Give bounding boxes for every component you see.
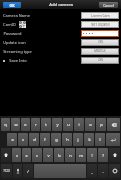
- staticText: Add camera: [49, 2, 73, 8]
- staticText: Cancel: [103, 3, 114, 8]
- button[interactable]: Keyboard settings: [109, 164, 120, 178]
- staticText: o: [89, 122, 92, 127]
- staticText: m: [79, 153, 83, 158]
- button[interactable]: j: [73, 133, 83, 146]
- staticText: p: [100, 122, 103, 127]
- button[interactable]: /: [23, 164, 33, 178]
- staticText: Camera Name: [3, 13, 30, 18]
- staticText: w: [14, 122, 18, 127]
- staticText: x: [25, 153, 28, 158]
- staticText: Password: [3, 31, 22, 36]
- button[interactable]: q: [1, 118, 10, 131]
- staticText: f: [44, 137, 46, 142]
- staticText: z: [16, 153, 18, 158]
- button[interactable]: t: [41, 118, 51, 131]
- staticText: d: [33, 137, 36, 142]
- button[interactable]: v: [43, 148, 53, 162]
- staticText: v: [47, 153, 50, 158]
- staticText: c: [36, 153, 38, 158]
- staticText: a: [11, 137, 14, 142]
- button[interactable]: ON: [81, 39, 119, 46]
- staticText: j: [77, 137, 79, 142]
- button[interactable]: i: [74, 118, 84, 131]
- button[interactable]: Backspace: [107, 118, 120, 131]
- staticText: ,: [91, 169, 93, 174]
- staticText: ON: [98, 58, 103, 62]
- staticText: b: [58, 153, 61, 158]
- button[interactable]: l: [95, 133, 105, 146]
- button[interactable]: k: [84, 133, 94, 146]
- staticText: /: [27, 169, 29, 174]
- staticText: q: [4, 122, 7, 127]
- staticText: t: [45, 122, 47, 127]
- button[interactable]: Enter: [106, 133, 120, 146]
- button[interactable]: e: [21, 118, 30, 131]
- staticText: ?123: [3, 169, 10, 173]
- staticText: ?: [102, 153, 104, 158]
- staticText: MIDDLE: [94, 49, 106, 53]
- button[interactable]: CamID: [0, 20, 121, 29]
- button[interactable]: ,: [87, 164, 97, 178]
- staticText: 901 002803: [91, 22, 110, 27]
- staticText: Streaming type: [3, 49, 32, 54]
- button[interactable]: o: [85, 118, 95, 131]
- button[interactable]: OK: [3, 2, 21, 8]
- staticText: Save Into: [9, 58, 27, 63]
- staticText: e: [24, 122, 27, 127]
- button[interactable]: u: [63, 118, 73, 131]
- button[interactable]: s: [18, 133, 28, 146]
- button[interactable]: [81, 30, 119, 37]
- button[interactable]: p: [96, 118, 106, 131]
- button[interactable]: b: [54, 148, 64, 162]
- button[interactable]: z: [12, 148, 21, 162]
- button[interactable]: w: [11, 118, 20, 131]
- button[interactable]: x: [22, 148, 31, 162]
- staticText: k: [88, 137, 91, 142]
- button[interactable]: [34, 164, 86, 178]
- button[interactable]: Shift: [1, 148, 11, 162]
- button[interactable]: 901 002803: [81, 21, 119, 28]
- button[interactable]: Streaming type: [0, 47, 121, 56]
- staticText: ON: [98, 40, 103, 44]
- staticText: h: [66, 137, 69, 142]
- staticText: OK: [9, 3, 15, 8]
- button[interactable]: MIDDLE: [81, 48, 119, 55]
- button[interactable]: Cancel: [99, 2, 118, 8]
- staticText: g: [55, 137, 58, 142]
- button[interactable]: Camera Name: [0, 11, 121, 20]
- staticText: u: [67, 122, 70, 127]
- button[interactable]: Scan QR code: [19, 21, 26, 28]
- button[interactable]: Lorem Cam: [81, 12, 119, 19]
- staticText: !: [91, 153, 93, 158]
- button[interactable]: n: [65, 148, 75, 162]
- button[interactable]: Save Into: [0, 56, 121, 65]
- staticText: n: [69, 153, 72, 158]
- staticText: Lorem Cam: [91, 13, 110, 18]
- button[interactable]: ON: [81, 57, 119, 64]
- staticText: s: [22, 137, 24, 142]
- button[interactable]: m: [76, 148, 86, 162]
- staticText: CamID: [3, 22, 16, 27]
- button[interactable]: c: [32, 148, 42, 162]
- button[interactable]: f: [40, 133, 50, 146]
- button[interactable]: h: [62, 133, 72, 146]
- button[interactable]: d: [29, 133, 39, 146]
- button[interactable]: .: [98, 164, 108, 178]
- button[interactable]: y: [52, 118, 62, 131]
- button[interactable]: ?123: [1, 164, 12, 178]
- staticText: y: [56, 122, 59, 127]
- button[interactable]: Password: [0, 29, 121, 38]
- staticText: .: [102, 169, 104, 174]
- staticText: r: [35, 122, 37, 127]
- button[interactable]: Shift: [109, 148, 120, 162]
- button[interactable]: Update icon: [0, 38, 121, 47]
- button[interactable]: !: [87, 148, 97, 162]
- button[interactable]: g: [51, 133, 61, 146]
- button[interactable]: a: [7, 133, 17, 146]
- button[interactable]: Voice input: [13, 164, 22, 178]
- button[interactable]: ?: [98, 148, 108, 162]
- staticText: i: [78, 122, 80, 127]
- staticText: l: [99, 137, 101, 142]
- button[interactable]: r: [31, 118, 40, 131]
- staticText: Update icon: [3, 40, 26, 45]
